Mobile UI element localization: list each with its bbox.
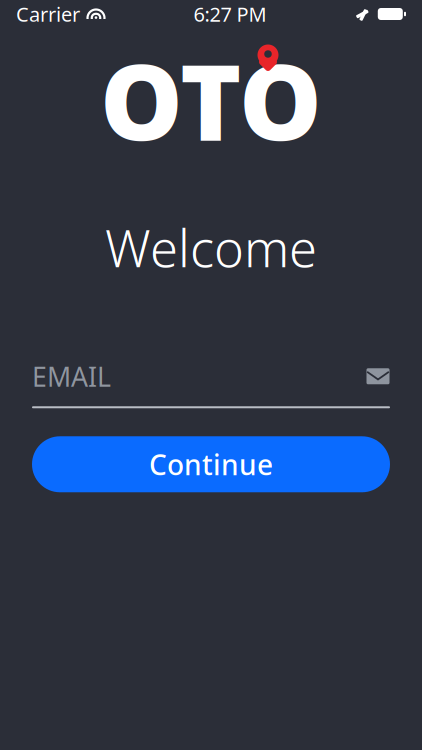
staticText: Welcome — [105, 214, 317, 281]
staticText: 6:27 PM — [193, 1, 266, 27]
staticText: OTO — [100, 31, 322, 169]
button[interactable]: Continue — [32, 436, 390, 492]
staticText: Continue — [149, 446, 273, 483]
staticText: Carrier — [16, 1, 80, 27]
staticText: EMAIL — [32, 359, 111, 394]
